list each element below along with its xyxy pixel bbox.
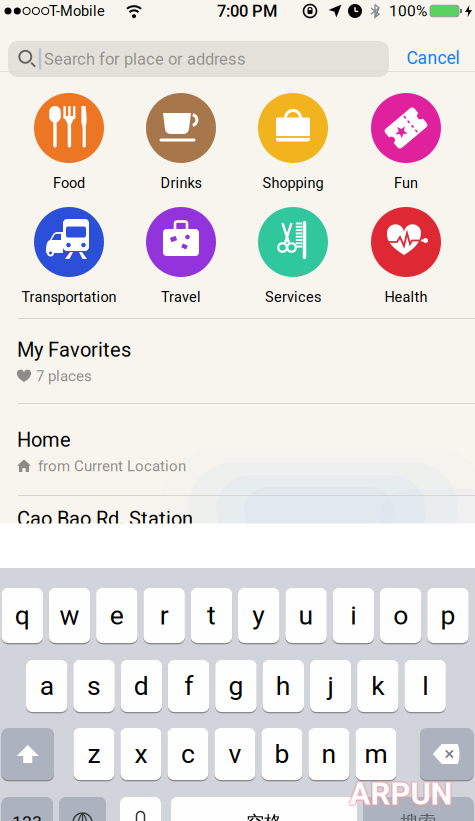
- staticText: from Current Location: [38, 457, 186, 475]
- staticText: Food: [53, 174, 85, 191]
- staticText: Services: [265, 288, 321, 305]
- button[interactable]: u: [285, 587, 327, 644]
- staticText: Health: [384, 288, 427, 305]
- button[interactable]: My Favorites: [0, 319, 475, 403]
- staticText: b: [274, 738, 289, 770]
- button[interactable]: Fun: [371, 93, 441, 163]
- button[interactable]: Drinks: [146, 93, 216, 163]
- staticText: c: [181, 738, 195, 770]
- staticText: ARPUN: [348, 777, 451, 813]
- button[interactable]: Next keyboard: [59, 796, 106, 821]
- staticText: 7:00 PM: [217, 1, 277, 21]
- button[interactable]: Shopping: [258, 93, 328, 163]
- button[interactable]: w: [49, 587, 90, 644]
- staticText: 123: [12, 812, 42, 821]
- button[interactable]: Shift: [1, 727, 54, 781]
- staticText: w: [59, 600, 79, 631]
- button[interactable]: Cancel: [406, 48, 459, 68]
- staticText: 空格: [246, 811, 282, 821]
- button[interactable]: Services: [258, 207, 328, 277]
- button[interactable]: Dictate: [120, 796, 161, 821]
- button[interactable]: 123: [1, 796, 53, 821]
- staticText: i: [350, 600, 356, 631]
- button[interactable]: Travel: [146, 207, 216, 277]
- staticText: u: [298, 600, 313, 631]
- staticText: n: [321, 738, 336, 770]
- staticText: x: [134, 738, 147, 770]
- button[interactable]: i: [333, 587, 374, 644]
- staticText: 搜索: [400, 811, 436, 821]
- button[interactable]: Home: [0, 404, 475, 495]
- staticText: l: [422, 670, 428, 702]
- staticText: Drinks: [160, 174, 201, 191]
- staticText: f: [184, 670, 193, 702]
- button[interactable]: c: [167, 727, 208, 781]
- button[interactable]: l: [404, 659, 446, 713]
- staticText: 7 places: [36, 367, 92, 385]
- button[interactable]: a: [26, 659, 67, 713]
- button[interactable]: g: [215, 659, 257, 713]
- staticText: m: [364, 738, 387, 770]
- button[interactable]: Search for place or address: [8, 41, 389, 77]
- button[interactable]: 搜索: [363, 796, 473, 821]
- button[interactable]: Transportation: [34, 207, 104, 277]
- staticText: Shopping: [262, 174, 323, 191]
- button[interactable]: t: [191, 587, 232, 644]
- button[interactable]: Health: [371, 207, 441, 277]
- staticText: Cao Bao Rd. Station: [17, 507, 193, 531]
- staticText: Cancel: [406, 48, 459, 68]
- staticText: 100%: [389, 2, 427, 20]
- button[interactable]: d: [121, 659, 162, 713]
- staticText: y: [252, 600, 265, 631]
- button[interactable]: x: [120, 727, 161, 781]
- staticText: My Favorites: [17, 338, 131, 362]
- staticText: ARPUN: [349, 776, 452, 812]
- button[interactable]: o: [380, 587, 421, 644]
- button[interactable]: e: [96, 587, 138, 644]
- staticText: z: [87, 738, 100, 770]
- button[interactable]: y: [238, 587, 279, 644]
- staticText: T-Mobile: [49, 2, 105, 19]
- button[interactable]: f: [168, 659, 209, 713]
- staticText: ARPUN: [351, 777, 454, 813]
- staticText: ARPUN: [348, 774, 451, 811]
- button[interactable]: k: [357, 659, 399, 713]
- staticText: s: [87, 670, 101, 702]
- staticText: Travel: [161, 288, 201, 305]
- button[interactable]: r: [143, 587, 185, 644]
- staticText: Search for place or address: [44, 49, 246, 69]
- button[interactable]: n: [308, 727, 349, 781]
- button[interactable]: s: [73, 659, 115, 713]
- button[interactable]: j: [310, 659, 351, 713]
- staticText: r: [160, 600, 169, 631]
- staticText: p: [440, 600, 455, 631]
- button[interactable]: b: [261, 727, 302, 781]
- staticText: k: [371, 670, 384, 702]
- button[interactable]: q: [1, 587, 43, 644]
- staticText: o: [393, 600, 408, 631]
- staticText: q: [15, 600, 30, 631]
- staticText: g: [228, 670, 243, 702]
- button[interactable]: v: [214, 727, 255, 781]
- button[interactable]: 空格: [171, 796, 357, 821]
- button[interactable]: z: [73, 727, 114, 781]
- staticText: Home: [17, 428, 71, 452]
- staticText: ARPUN: [351, 774, 454, 811]
- staticText: h: [276, 670, 291, 702]
- staticText: a: [40, 670, 54, 702]
- button[interactable]: Food: [34, 93, 104, 163]
- staticText: Transportation: [21, 288, 116, 305]
- staticText: Fun: [394, 174, 418, 191]
- staticText: j: [327, 670, 333, 702]
- staticText: t: [207, 600, 216, 631]
- staticText: d: [134, 670, 149, 702]
- staticText: v: [228, 738, 241, 770]
- staticText: e: [110, 600, 124, 631]
- button[interactable]: m: [355, 727, 396, 781]
- button[interactable]: p: [427, 587, 469, 644]
- button[interactable]: h: [262, 659, 304, 713]
- button[interactable]: Delete: [420, 727, 473, 781]
